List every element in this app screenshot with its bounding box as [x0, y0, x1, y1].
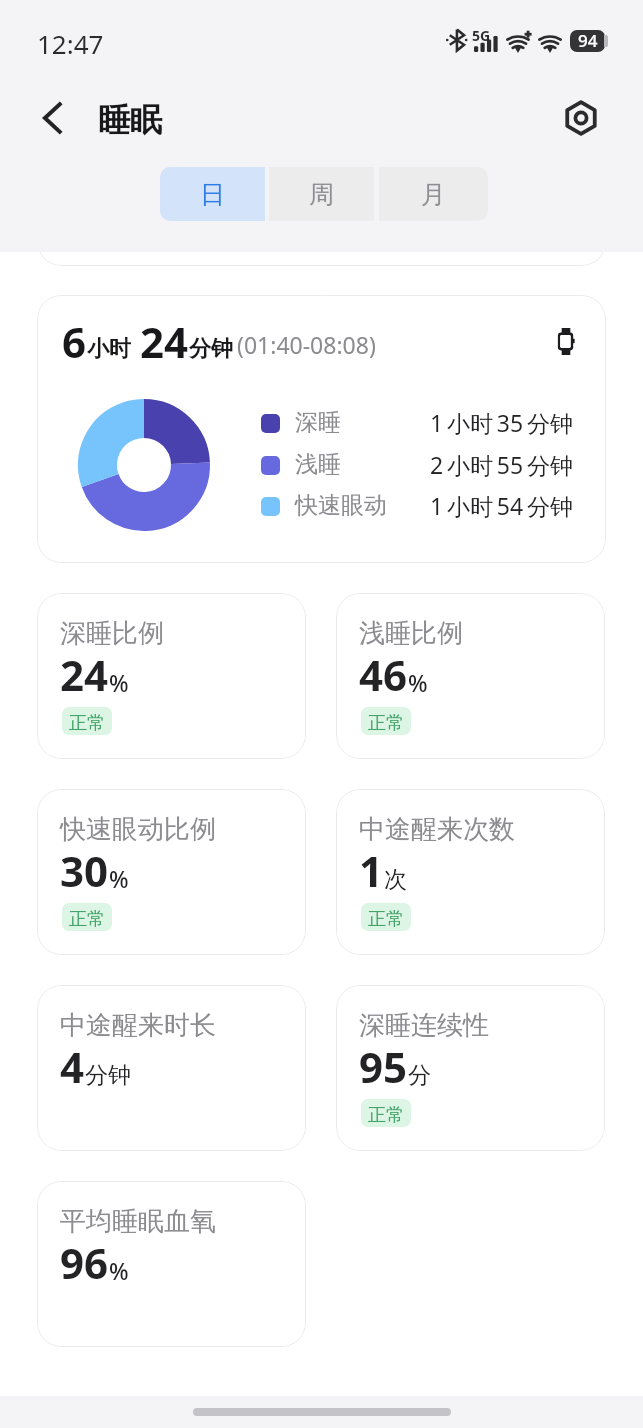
staticText: 12:47	[37, 26, 104, 61]
button[interactable]: Settings	[554, 91, 608, 145]
button[interactable]: 浅睡比例	[336, 593, 605, 759]
staticText: 4	[60, 1038, 85, 1095]
button[interactable]: 中途醒来时长	[37, 985, 306, 1151]
staticText: 快速眼动比例	[60, 813, 216, 846]
staticText: 30	[60, 842, 109, 899]
staticText: 94	[578, 30, 598, 51]
staticText: 1 小时 54 分钟	[430, 490, 573, 521]
staticText: 睡眠	[98, 100, 162, 140]
staticText: 6	[62, 313, 87, 370]
staticText: 深睡	[295, 408, 341, 437]
staticText: 平均睡眠血氧	[60, 1205, 216, 1238]
staticText: 周	[309, 179, 334, 210]
staticText: (01:40-08:08)	[237, 329, 376, 360]
staticText: 分钟	[189, 335, 233, 363]
staticText: 2 小时 55 分钟	[430, 449, 573, 480]
staticText: 深睡比例	[60, 617, 164, 650]
staticText: 1 小时 35 分钟	[430, 407, 573, 438]
staticText: 浅睡比例	[359, 617, 463, 650]
button[interactable]: 快速眼动比例	[37, 789, 306, 955]
staticText: 正常	[368, 1104, 404, 1127]
staticText: 中途醒来时长	[60, 1009, 216, 1042]
staticText: 24	[60, 646, 109, 703]
button[interactable]: 周	[269, 167, 374, 221]
staticText: 正常	[368, 712, 404, 735]
button[interactable]: 平均睡眠血氧	[37, 1181, 306, 1347]
staticText: %	[408, 667, 428, 698]
staticText: 浅睡	[295, 450, 341, 479]
staticText: %	[109, 863, 129, 894]
staticText: %	[109, 667, 129, 698]
button[interactable]: 日	[160, 167, 265, 221]
staticText: 日	[200, 179, 225, 210]
button[interactable]: 6	[37, 295, 606, 563]
staticText: 95	[359, 1038, 408, 1095]
staticText: 24	[140, 313, 189, 370]
staticText: 小时	[87, 335, 131, 363]
button[interactable]: 深睡比例	[37, 593, 306, 759]
staticText: 46	[359, 646, 408, 703]
staticText: 1	[359, 842, 384, 899]
staticText: 正常	[69, 908, 105, 931]
staticText: 5G	[472, 26, 491, 45]
staticText: %	[109, 1255, 129, 1286]
button[interactable]: 月	[379, 167, 488, 221]
staticText: 次	[384, 865, 407, 894]
button[interactable]: 深睡连续性	[336, 985, 605, 1151]
button[interactable]: 中途醒来次数	[336, 789, 605, 955]
staticText: 正常	[69, 712, 105, 735]
staticText: 月	[421, 179, 446, 210]
staticText: 分	[408, 1061, 431, 1090]
staticText: 96	[60, 1234, 109, 1291]
staticText: 分钟	[85, 1061, 131, 1090]
button[interactable]: Back	[26, 92, 78, 144]
staticText: 快速眼动	[295, 491, 387, 520]
staticText: 深睡连续性	[359, 1009, 489, 1042]
staticText: 中途醒来次数	[359, 813, 515, 846]
staticText: 正常	[368, 908, 404, 931]
